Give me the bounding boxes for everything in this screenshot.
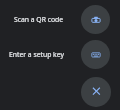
button[interactable]: Enter a setup key <box>81 40 110 69</box>
staticText: Scan a QR code <box>14 15 64 24</box>
button[interactable]: Scan a QR code <box>81 5 110 34</box>
staticText: Enter a setup key <box>9 50 64 59</box>
button[interactable]: Close <box>81 77 111 107</box>
